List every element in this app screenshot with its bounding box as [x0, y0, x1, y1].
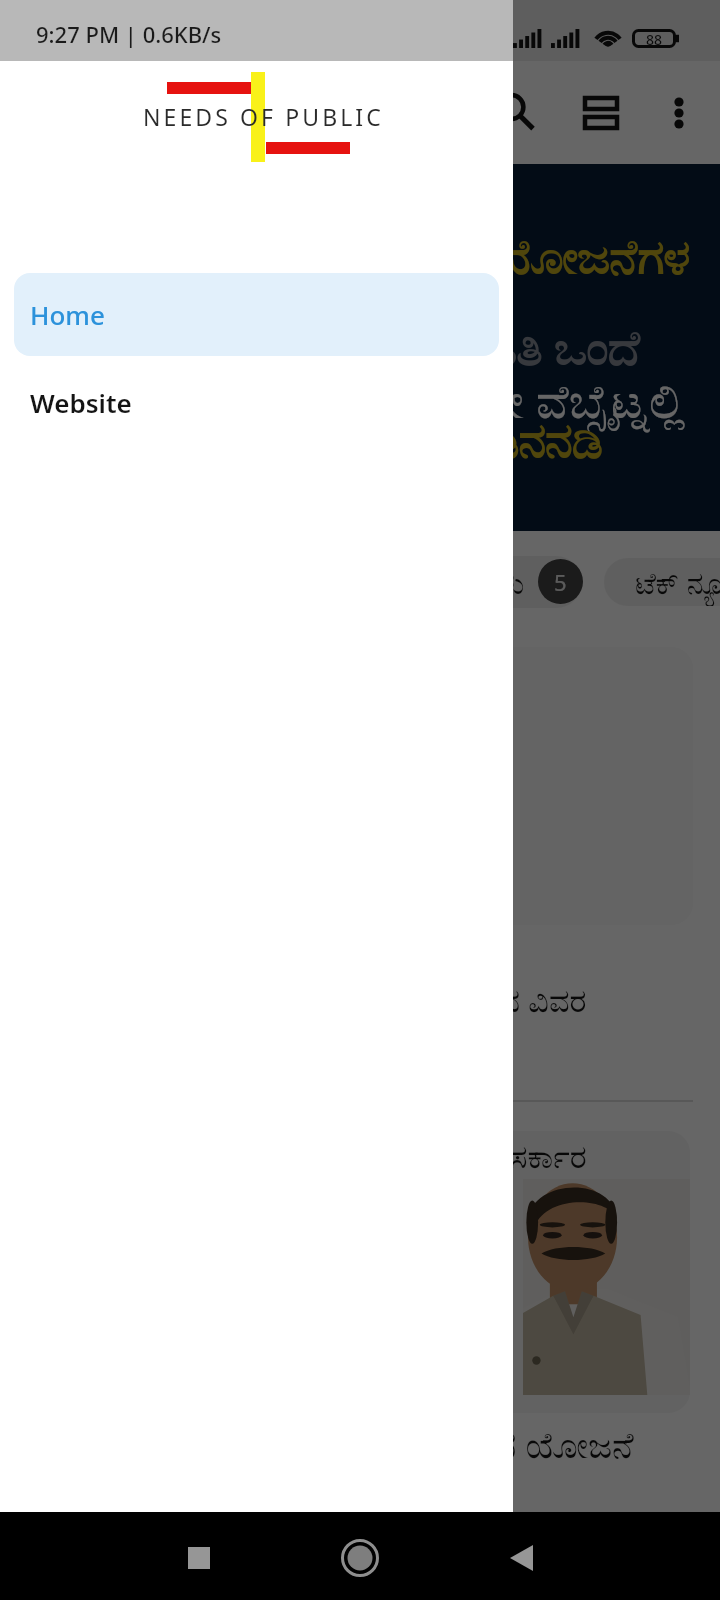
staticText: ಎಲ್ಲವೂ ಇದು ನಮ್ಮ ಕನ್ನಡಿನನಡಿ — [0, 407, 720, 472]
button[interactable]: Home — [14, 273, 499, 356]
staticText: ಹೆಚ್ಚಿನ ವಿವರ — [454, 978, 587, 1022]
staticText: NEEDS OF PUBLIC — [143, 101, 384, 132]
staticText: ಟೆಕ್ ನ್ಯೂಸ್ — [635, 562, 720, 603]
staticText: 9:27 PM | 0.6KB/s — [36, 19, 222, 49]
button[interactable]: More options — [667, 90, 691, 136]
staticText: ಕೇಂದ್ರ ಮತ್ತು ರಾಜ್ಯ ಸರಕಾರದ ಯೋಜನೆಗಳ — [0, 223, 720, 288]
staticText: Home — [30, 297, 105, 332]
staticText: ಹೊಸ ಯೋಜನೆ — [448, 1420, 634, 1469]
staticText: ಮಾಹಿತಿ ಸಿಗುವುದು ನಿಮಗೆ ಇದೇ ವೆಬ್ಸೈಟ್ನಲ್ಲಿ — [0, 367, 720, 432]
staticText: 5 — [554, 567, 567, 597]
button[interactable]: 5 — [538, 559, 583, 604]
button[interactable]: Home — [341, 1539, 379, 1577]
staticText: ಎಲ್ಲಾ ಸುದ್ದಿಗಳು — [374, 562, 525, 603]
staticText: 88 — [646, 30, 663, 47]
staticText: ನಿಮಗೆ ಬೇಕಾದ ಎಲ್ಲಾ ಮಾಹಿತಿ ಒಂದೆ — [0, 314, 720, 379]
button[interactable]: NEEDS OF PUBLIC — [0, 61, 513, 273]
staticText: Website — [30, 385, 132, 420]
button[interactable]: ಟೆಕ್ ನ್ಯೂಸ್ — [604, 558, 720, 606]
button[interactable] — [27, 647, 693, 925]
button[interactable]: Search — [493, 90, 539, 136]
button[interactable]: ಎಲ್ಲಾ ಸುದ್ದಿಗಳು — [318, 556, 582, 608]
staticText: ರಾಜ್ಯ ಸರ್ಕಾರ — [448, 1134, 587, 1178]
button[interactable]: Website — [14, 361, 499, 444]
button[interactable]: Back — [510, 1545, 533, 1571]
button[interactable]: ರಾಜ್ಯ ಸರ್ಕಾರ — [27, 1131, 690, 1413]
button[interactable]: View list — [578, 90, 624, 136]
